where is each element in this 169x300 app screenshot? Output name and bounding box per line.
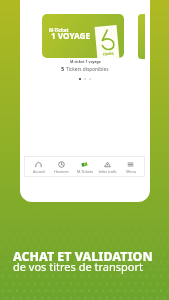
staticText: de vos titres de transport [13, 259, 143, 274]
staticText: M-ticket 1 voyage [70, 59, 101, 64]
button[interactable]: Horaires [50, 161, 73, 174]
staticText: 5 [61, 65, 66, 73]
staticText: 1 VOYAGE [51, 30, 91, 41]
staticText: Infos trafic [98, 169, 117, 174]
staticText: Horaires [54, 169, 69, 174]
staticText: M-Ticket [49, 27, 69, 33]
button[interactable]: Infos trafic [96, 161, 119, 174]
staticText: Menu [126, 169, 136, 174]
button[interactable]: Menu [119, 161, 142, 174]
staticText: tisséo [103, 50, 114, 56]
button[interactable]: M-Ticket [42, 14, 124, 58]
button[interactable]: M-Tickets [73, 161, 96, 174]
button[interactable]: Accueil [27, 161, 50, 174]
staticText: M-Tickets [77, 169, 93, 174]
staticText: ACHAT ET VALIDATION [13, 248, 153, 265]
staticText: Tickets disponibles [66, 66, 109, 73]
button[interactable] [138, 14, 145, 59]
staticText: Accueil [33, 169, 45, 174]
